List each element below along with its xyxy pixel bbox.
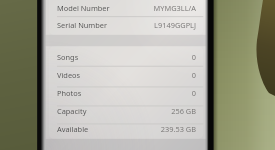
staticText: 239.53 GB <box>96 124 196 134</box>
staticText: Photos <box>57 88 82 98</box>
staticText: Videos <box>57 70 81 80</box>
staticText: L9149GGPLJ <box>96 20 196 30</box>
button[interactable]: Model Number <box>49 0 203 16</box>
staticText: 0 <box>96 52 196 62</box>
button[interactable]: Songs <box>49 49 203 65</box>
button[interactable]: Videos <box>49 67 203 83</box>
staticText: Model Number <box>57 3 110 13</box>
staticText: Available <box>57 124 89 134</box>
button[interactable]: Available <box>49 121 203 137</box>
staticText: 0 <box>96 70 196 80</box>
button[interactable]: Photos <box>49 85 203 101</box>
button[interactable]: Serial Number <box>49 17 203 33</box>
staticText: 0 <box>96 88 196 98</box>
staticText: MYMG3LL/A <box>96 3 196 13</box>
staticText: Songs <box>57 52 79 62</box>
button[interactable]: Capacity <box>49 103 203 119</box>
staticText: Capacity <box>57 106 87 116</box>
staticText: 256 GB <box>96 106 196 116</box>
staticText: Serial Number <box>57 20 108 30</box>
